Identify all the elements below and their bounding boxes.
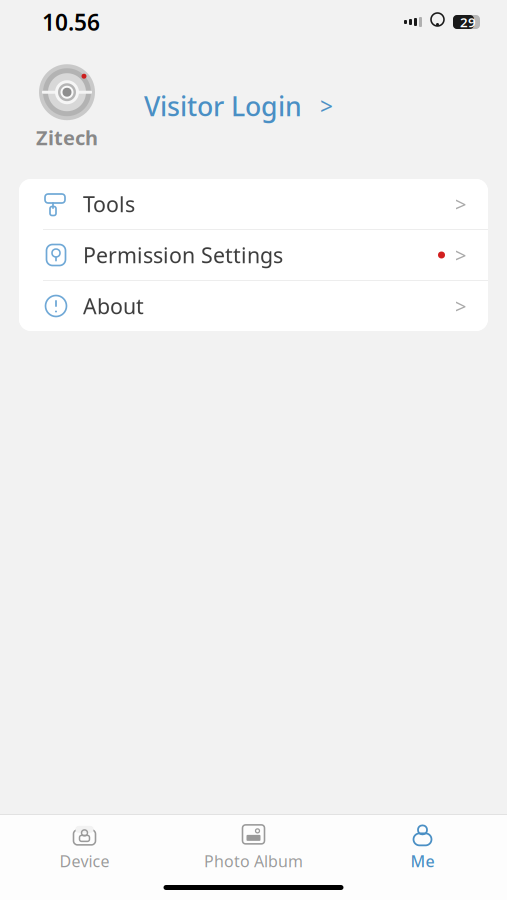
staticText: Zitech: [36, 124, 98, 151]
staticText: Permission Settings: [83, 241, 283, 269]
staticText: Tools: [83, 190, 135, 218]
staticText: Me: [410, 850, 434, 872]
staticText: Visitor Login: [144, 88, 302, 124]
button[interactable]: About: [19, 281, 488, 331]
staticText: About: [83, 292, 144, 320]
button[interactable]: Device: [0, 823, 169, 871]
staticText: >: [455, 293, 466, 319]
staticText: >: [455, 242, 466, 268]
staticText: >: [320, 91, 333, 121]
staticText: 10.56: [42, 7, 100, 37]
staticText: 29: [460, 13, 476, 31]
staticText: Photo Album: [204, 850, 303, 872]
button[interactable]: Me: [338, 823, 507, 871]
button[interactable]: Tools: [19, 179, 488, 229]
button[interactable]: Photo Album: [169, 823, 338, 871]
staticText: Device: [59, 850, 109, 872]
staticText: >: [455, 191, 466, 217]
button[interactable]: Zitech: [0, 56, 507, 156]
button[interactable]: Permission Settings: [19, 230, 488, 280]
